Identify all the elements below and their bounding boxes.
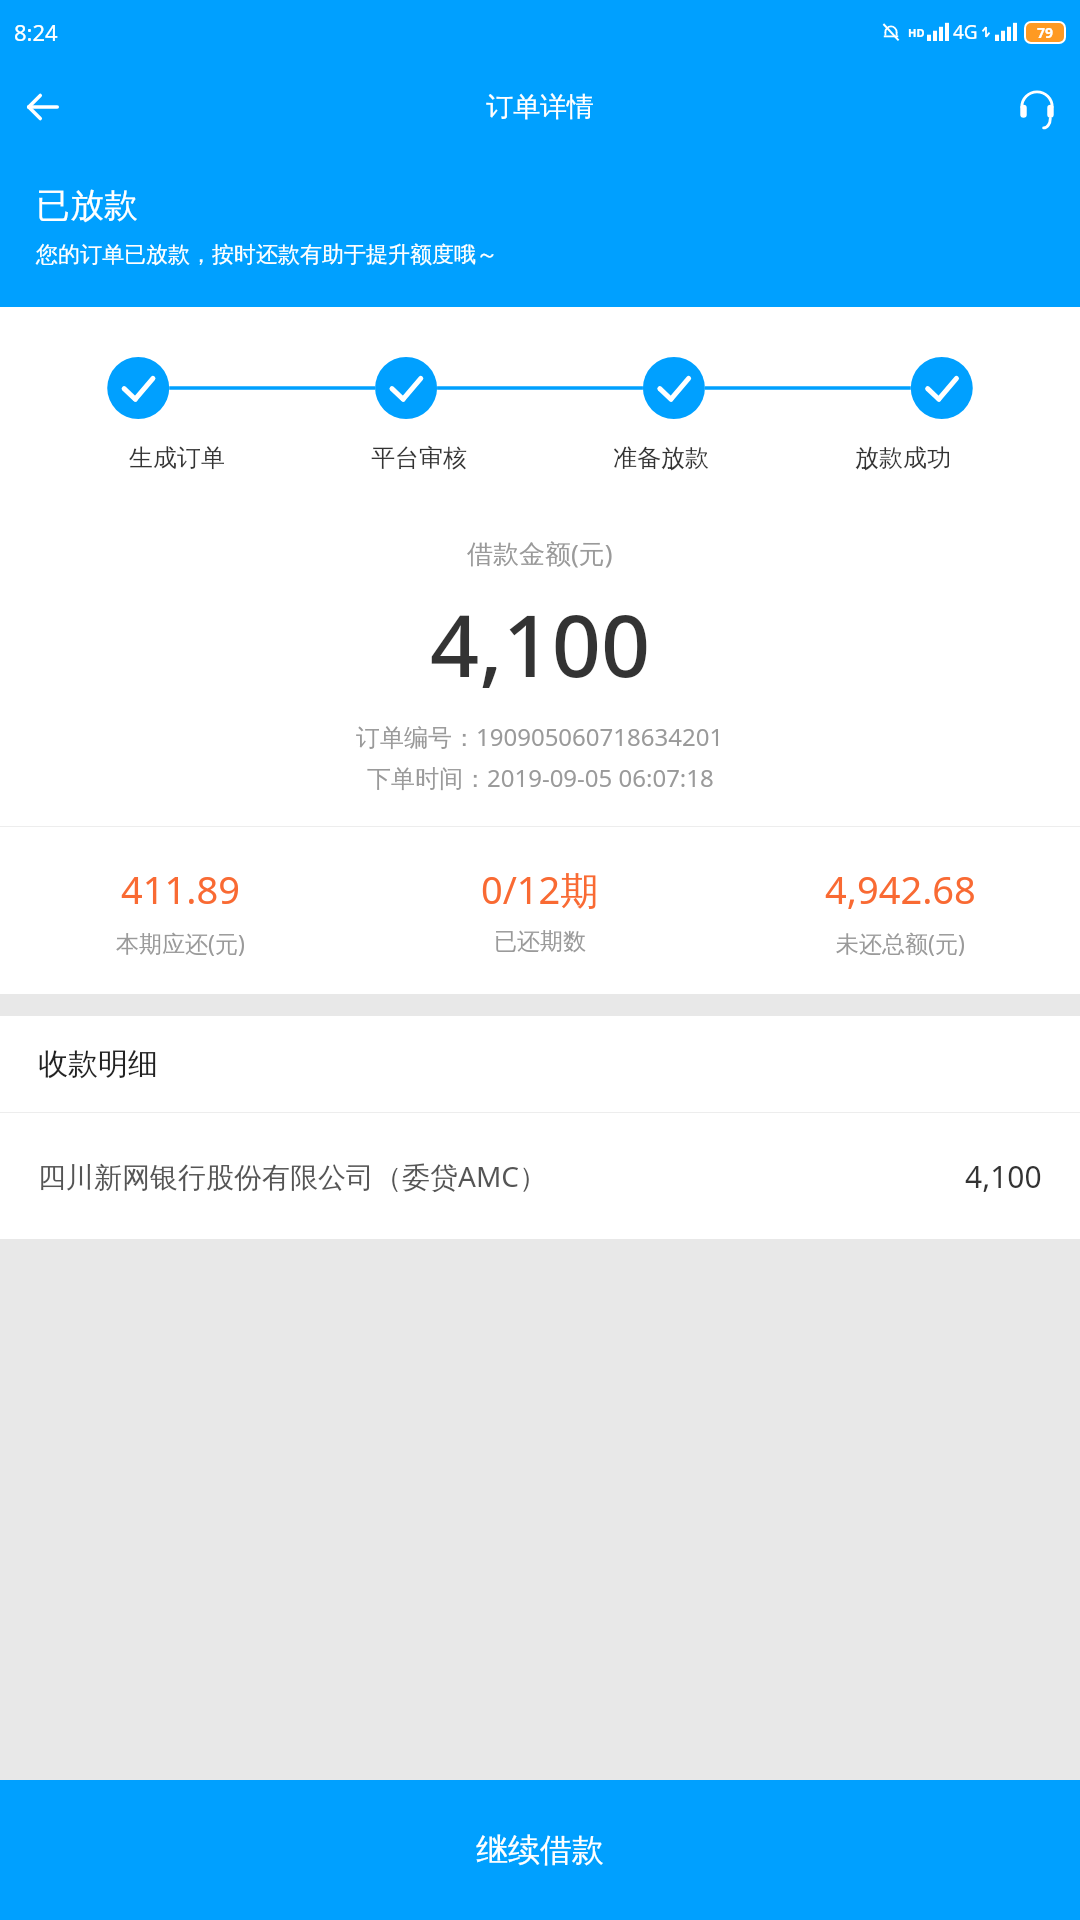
staticText: HD [908,25,925,40]
button[interactable]: Customer service [994,64,1080,150]
staticText: 4,100 [965,1156,1042,1197]
staticText: 已放款 [36,184,138,227]
staticText: 0/12期 [481,863,599,915]
staticText: 四川新网银行股份有限公司（委贷AMC） [38,1157,547,1195]
staticText: 411.89 [121,863,240,915]
staticText: 下单时间：2019-09-05 06:07:18 [367,761,714,794]
staticText: 79 [1037,23,1054,42]
staticText: 您的订单已放款，按时还款有助于提升额度哦～ [36,241,498,269]
button[interactable]: 继续借款 [0,1780,1080,1920]
staticText: 订单编号：190905060718634201 [356,720,724,753]
staticText: 未还总额(元) [836,927,965,958]
staticText: 平台审核 [371,443,467,473]
staticText: 订单详情 [486,90,594,124]
staticText: 放款成功 [855,443,951,473]
staticText: 4,942.68 [825,863,976,915]
button[interactable]: Back [0,64,86,150]
staticText: 生成订单 [129,443,225,473]
staticText: 本期应还(元) [116,927,245,958]
staticText: 准备放款 [613,443,709,473]
staticText: 4G [953,19,978,45]
staticText: 4,100 [430,585,651,702]
staticText: 已还期数 [494,927,586,956]
staticText: 继续借款 [476,1830,604,1870]
staticText: 收款明细 [38,1045,158,1083]
staticText: 8:24 [14,17,58,47]
button[interactable]: 四川新网银行股份有限公司（委贷AMC） [0,1113,1080,1239]
staticText: 借款金额(元) [467,535,613,571]
